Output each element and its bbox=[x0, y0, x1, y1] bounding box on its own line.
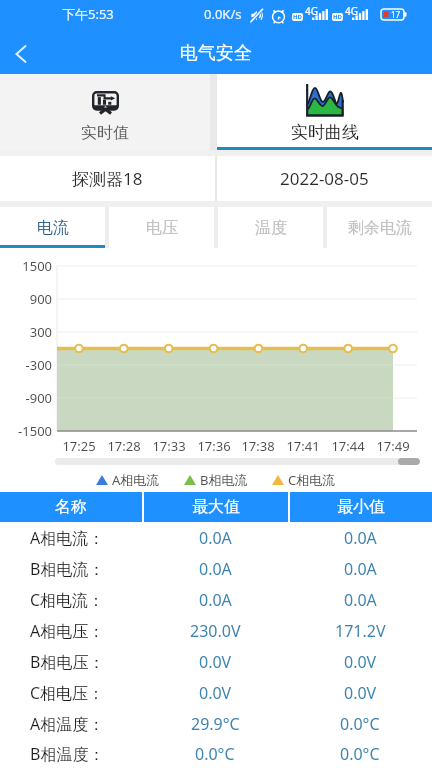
staticText: 0.0°C bbox=[340, 743, 380, 765]
staticText: 剩余电流 bbox=[348, 218, 412, 238]
staticText: 0.0A bbox=[199, 527, 232, 549]
staticText: 4G bbox=[345, 4, 358, 18]
staticText: -1500 bbox=[0, 422, 52, 440]
staticText: 17 bbox=[391, 9, 401, 20]
button[interactable]: A相电流： bbox=[0, 522, 432, 553]
staticText: 探测器18 bbox=[72, 167, 143, 190]
button[interactable]: B相电流： bbox=[0, 553, 432, 584]
button[interactable]: Back bbox=[0, 33, 42, 75]
button[interactable]: A相电压： bbox=[0, 615, 432, 646]
button[interactable]: 最小值 bbox=[290, 492, 432, 522]
staticText: -900 bbox=[0, 389, 52, 407]
staticText: B相电压： bbox=[30, 651, 105, 673]
staticText: 900 bbox=[0, 290, 52, 308]
staticText: 0.0A bbox=[344, 558, 377, 580]
staticText: HD bbox=[333, 13, 342, 21]
staticText: B相电流 bbox=[200, 471, 248, 489]
staticText: 0.0V bbox=[199, 682, 232, 704]
button[interactable]: A相温度： bbox=[0, 708, 432, 739]
staticText: 0.0V bbox=[344, 682, 377, 704]
staticText: 0.0°C bbox=[195, 743, 235, 765]
button[interactable]: C相电压： bbox=[0, 677, 432, 708]
staticText: 0.0V bbox=[199, 651, 232, 673]
staticText: C相电流 bbox=[288, 471, 336, 489]
staticText: 0.0A bbox=[344, 527, 377, 549]
staticText: A相温度： bbox=[30, 713, 105, 735]
button[interactable]: 温度 bbox=[218, 207, 323, 248]
staticText: 17:36 bbox=[191, 437, 237, 455]
staticText: 0.0A bbox=[344, 589, 377, 611]
button[interactable]: 2022-08-05 bbox=[217, 156, 432, 201]
staticText: 17:41 bbox=[280, 437, 326, 455]
staticText: 4G bbox=[305, 4, 318, 18]
staticText: 电气安全 bbox=[180, 42, 252, 65]
staticText: 17:33 bbox=[146, 437, 192, 455]
staticText: 电压 bbox=[146, 218, 178, 238]
staticText: A相电流： bbox=[30, 527, 105, 549]
staticText: C相电流： bbox=[30, 589, 105, 611]
staticText: 171.2V bbox=[335, 620, 386, 642]
button[interactable]: 名称 bbox=[0, 492, 142, 522]
staticText: 0.0°C bbox=[340, 713, 380, 735]
staticText: 最小值 bbox=[337, 497, 385, 517]
staticText: 0.0A bbox=[199, 558, 232, 580]
button[interactable]: B相电压： bbox=[0, 646, 432, 677]
staticText: C相电压： bbox=[30, 682, 105, 704]
staticText: HD bbox=[293, 13, 302, 21]
button[interactable]: 探测器18 bbox=[0, 156, 215, 201]
staticText: 300 bbox=[0, 323, 52, 341]
staticText: B相温度： bbox=[30, 743, 105, 765]
staticText: 最大值 bbox=[192, 497, 240, 517]
button[interactable]: C相电流： bbox=[0, 584, 432, 615]
staticText: 17:25 bbox=[56, 437, 102, 455]
staticText: 电流 bbox=[37, 218, 69, 238]
staticText: 17:49 bbox=[370, 437, 416, 455]
staticText: 230.0V bbox=[190, 620, 241, 642]
staticText: 实时曲线 bbox=[291, 122, 359, 143]
button[interactable]: B相温度： bbox=[0, 739, 432, 768]
staticText: 1500 bbox=[0, 257, 52, 275]
button[interactable]: 实时曲线 bbox=[217, 74, 432, 150]
staticText: A相电压： bbox=[30, 620, 105, 642]
staticText: 名称 bbox=[55, 497, 87, 517]
staticText: 0.0V bbox=[344, 651, 377, 673]
button[interactable]: 电压 bbox=[109, 207, 214, 248]
staticText: 2022-08-05 bbox=[280, 167, 369, 190]
button[interactable]: 实时值 bbox=[0, 74, 210, 150]
button[interactable]: 剩余电流 bbox=[327, 207, 432, 248]
staticText: 29.9°C bbox=[191, 713, 240, 735]
staticText: 17:38 bbox=[235, 437, 281, 455]
staticText: 温度 bbox=[255, 218, 287, 238]
staticText: 下午5:53 bbox=[62, 5, 114, 23]
staticText: 17:28 bbox=[101, 437, 147, 455]
staticText: A相电流 bbox=[112, 471, 160, 489]
staticText: -300 bbox=[0, 356, 52, 374]
staticText: B相电流： bbox=[30, 558, 105, 580]
staticText: 17:44 bbox=[325, 437, 371, 455]
button[interactable]: 电流 bbox=[0, 207, 105, 248]
staticText: 0.0K/s bbox=[204, 5, 242, 23]
staticText: 实时值 bbox=[81, 123, 129, 143]
staticText: 0.0A bbox=[199, 589, 232, 611]
button[interactable]: 最大值 bbox=[144, 492, 288, 522]
